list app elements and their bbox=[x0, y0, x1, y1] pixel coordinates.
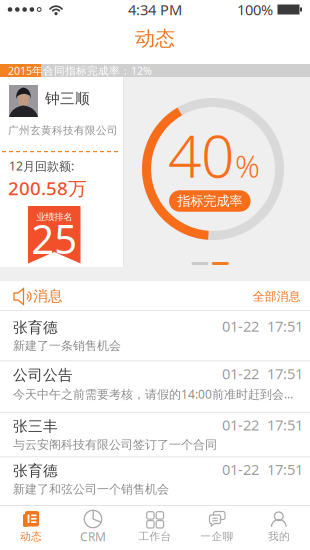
staticText: 张育德 bbox=[13, 462, 58, 480]
staticText: 今天中午之前需要考核，请假的14:00前准时赶到会议室，谢谢配合 bbox=[13, 386, 301, 402]
staticText: 动态 bbox=[135, 26, 175, 51]
staticText: 张育德 bbox=[13, 318, 58, 336]
staticText: CRM bbox=[80, 528, 106, 544]
button[interactable]: 全部消息 bbox=[252, 286, 300, 307]
staticText: 25 bbox=[31, 212, 77, 265]
staticText: 全部消息 bbox=[252, 289, 300, 304]
staticText: 工作台 bbox=[138, 530, 171, 543]
staticText: 一企聊 bbox=[200, 530, 233, 543]
staticText: 与云安阁科技有限公司签订了一个合同 bbox=[13, 437, 217, 452]
button[interactable]: 工作台 bbox=[124, 505, 186, 550]
staticText: 公司公告 bbox=[13, 366, 73, 384]
button[interactable]: 指标完成率 bbox=[169, 190, 251, 212]
staticText: 40 bbox=[168, 116, 234, 194]
button[interactable]: 张三丰 bbox=[0, 412, 310, 457]
staticText: 01-22 17:51 bbox=[222, 316, 303, 336]
staticText: 我的 bbox=[268, 530, 290, 543]
staticText: 业绩排名 bbox=[36, 211, 72, 223]
staticText: 新建了一条销售机会 bbox=[13, 338, 121, 353]
staticText: 新建了和弦公司一个销售机会 bbox=[13, 482, 169, 496]
staticText: 指标完成率 bbox=[177, 193, 242, 209]
staticText: 01-22 17:51 bbox=[222, 460, 303, 479]
staticText: 张三丰 bbox=[13, 417, 58, 435]
staticText: 广州玄黄科技有限公司 bbox=[8, 124, 118, 137]
button[interactable]: 动态 bbox=[0, 505, 62, 550]
staticText: 100% bbox=[237, 0, 273, 19]
button[interactable]: 张育德 bbox=[0, 457, 310, 505]
staticText: 12月回款额: bbox=[9, 158, 74, 174]
staticText: 01-22 17:51 bbox=[222, 364, 303, 383]
button[interactable]: 张育德 bbox=[0, 313, 310, 360]
staticText: 01-22 17:51 bbox=[222, 415, 303, 435]
button[interactable]: 一企聊 bbox=[186, 505, 248, 550]
staticText: 2015年合同指标完成率：12% bbox=[8, 63, 152, 78]
staticText: 200.58万 bbox=[8, 175, 87, 200]
staticText: 动态 bbox=[20, 530, 42, 543]
button[interactable]: 我的 bbox=[248, 505, 310, 550]
button[interactable]: 公司公告 bbox=[0, 361, 310, 412]
button[interactable]: CRM bbox=[62, 505, 124, 550]
staticText: 钟三顺 bbox=[45, 89, 90, 107]
staticText: 消息 bbox=[33, 287, 63, 305]
staticText: % bbox=[235, 145, 260, 186]
staticText: 4:34 PM bbox=[128, 0, 182, 19]
